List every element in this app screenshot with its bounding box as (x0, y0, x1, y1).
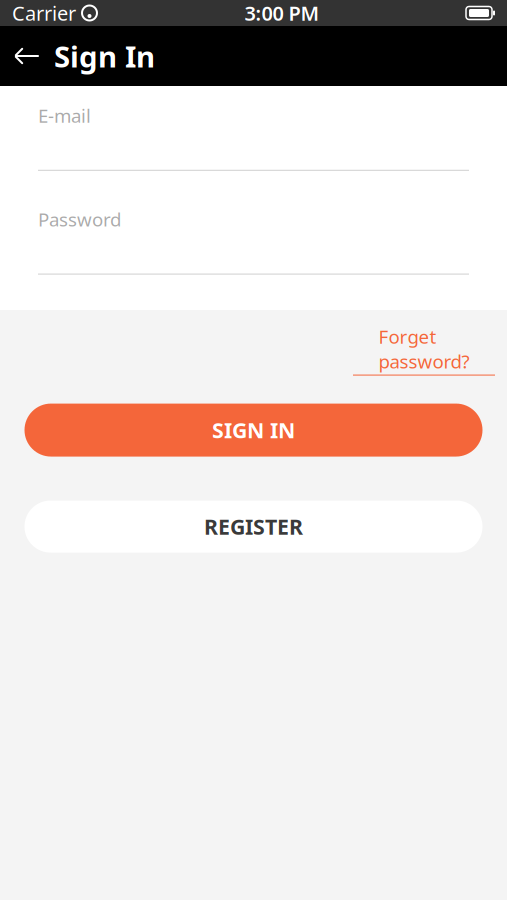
staticText: Password (38, 207, 121, 232)
staticText: REGISTER (204, 512, 303, 541)
staticText: Forget password? (378, 324, 469, 374)
button[interactable]: Back (0, 26, 54, 86)
button[interactable]: SIGN IN (24, 404, 482, 457)
staticText: Carrier (12, 0, 76, 26)
staticText: SIGN IN (212, 416, 295, 444)
button[interactable]: Forget password? (353, 324, 495, 376)
staticText: Sign In (54, 36, 155, 75)
staticText (76, 0, 81, 26)
staticText: 3:00 PM (244, 0, 319, 26)
staticText: E-mail (38, 103, 91, 128)
button[interactable]: REGISTER (24, 501, 482, 553)
